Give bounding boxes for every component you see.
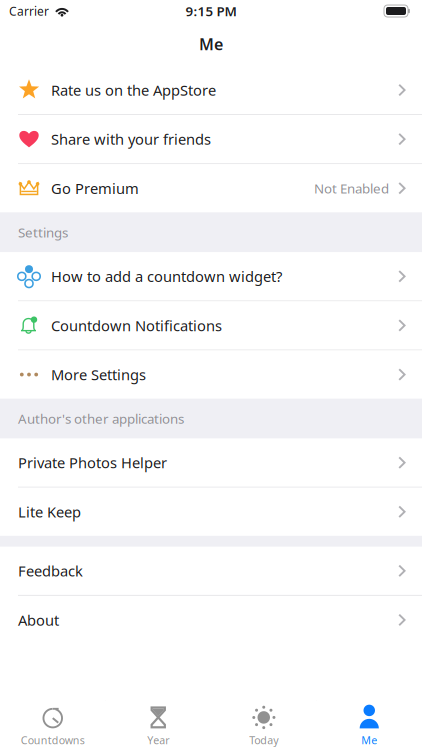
staticText: Countdown Notifications (51, 316, 222, 335)
staticText: Me (199, 33, 223, 55)
staticText: More Settings (51, 365, 146, 384)
staticText: Rate us on the AppStore (51, 80, 216, 100)
staticText: Countdowns (21, 733, 85, 747)
button[interactable]: Rate us on the AppStore (0, 66, 422, 114)
button[interactable]: Feedback (0, 547, 422, 595)
staticText: Settings (18, 223, 68, 241)
button[interactable]: Countdown Notifications (0, 301, 422, 349)
staticText: Go Premium (51, 178, 139, 198)
staticText: Year (147, 733, 169, 747)
button[interactable]: About (0, 596, 422, 644)
button[interactable]: Private Photos Helper (0, 439, 422, 487)
staticText: 9:15 PM (185, 2, 236, 20)
staticText: Not Enabled (314, 179, 389, 197)
staticText: How to add a countdown widget? (51, 267, 282, 286)
staticText: Feedback (18, 561, 83, 581)
staticText: About (18, 610, 59, 630)
staticText: Today (249, 733, 278, 747)
button[interactable]: Me (316, 698, 422, 750)
button[interactable]: How to add a countdown widget? (0, 252, 422, 300)
staticText: Me (361, 733, 377, 747)
staticText: Carrier (9, 3, 49, 19)
button[interactable]: Go Premium (0, 164, 422, 212)
button[interactable]: Countdowns (0, 698, 105, 750)
button[interactable]: Year (105, 698, 211, 750)
staticText: Private Photos Helper (18, 453, 167, 472)
staticText: Share with your friends (51, 129, 211, 149)
staticText: Lite Keep (18, 502, 81, 521)
button[interactable]: Lite Keep (0, 488, 422, 536)
button[interactable]: Today (211, 698, 316, 750)
staticText: Author's other applications (18, 410, 184, 427)
button[interactable]: More Settings (0, 350, 422, 399)
button[interactable]: Share with your friends (0, 115, 422, 163)
